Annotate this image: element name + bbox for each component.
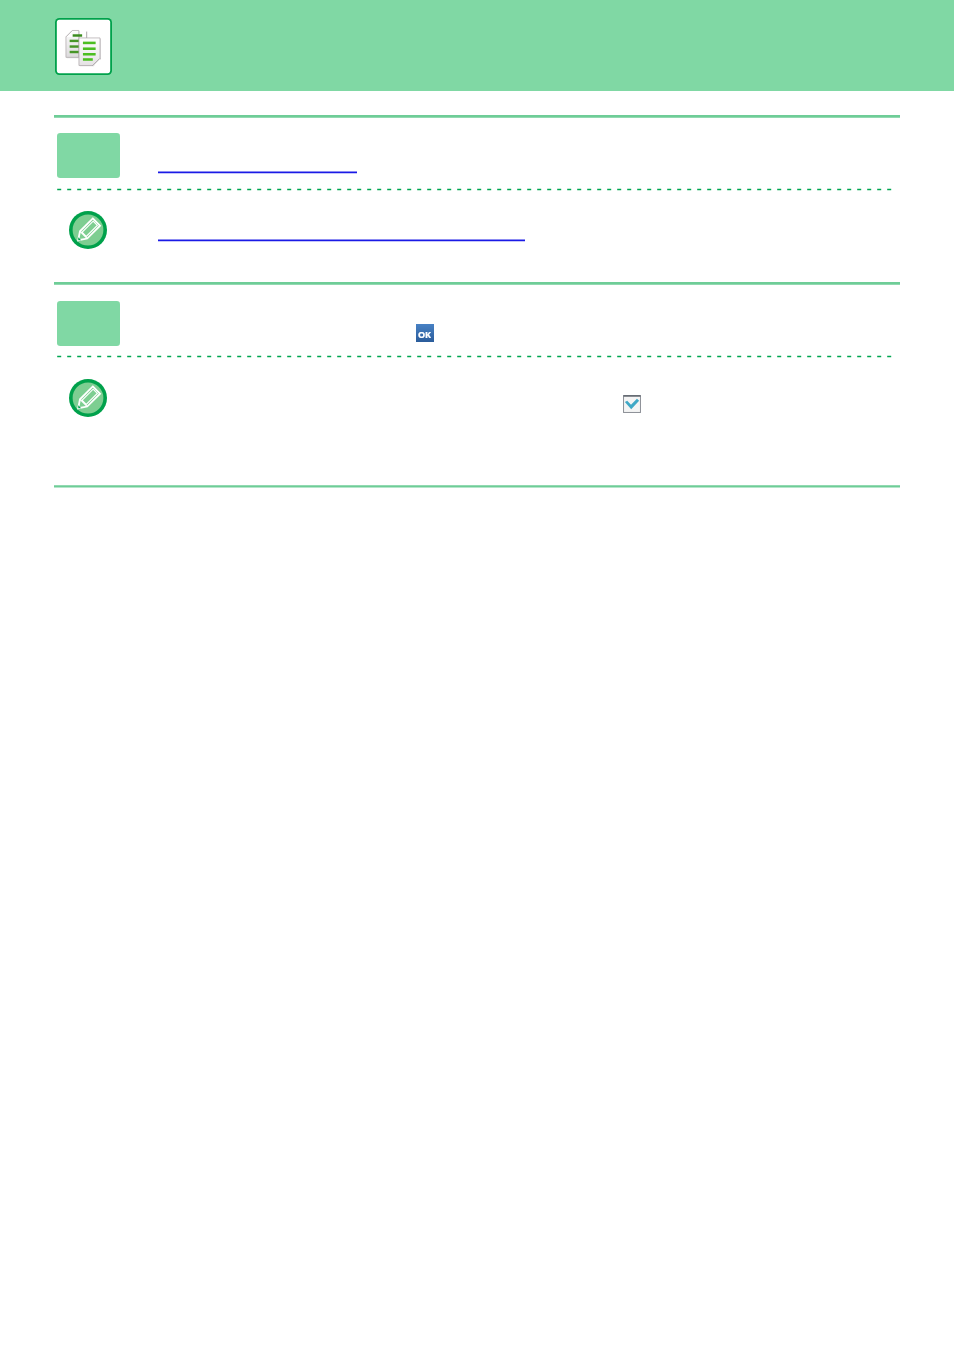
button[interactable]: OK <box>416 324 434 342</box>
button[interactable]: Copy <box>55 18 112 74</box>
staticText: OK <box>418 328 432 340</box>
button[interactable]: Checkbox <box>623 395 641 413</box>
button[interactable]: Step 1 <box>57 133 120 178</box>
button[interactable]: Step 2 <box>57 301 120 346</box>
